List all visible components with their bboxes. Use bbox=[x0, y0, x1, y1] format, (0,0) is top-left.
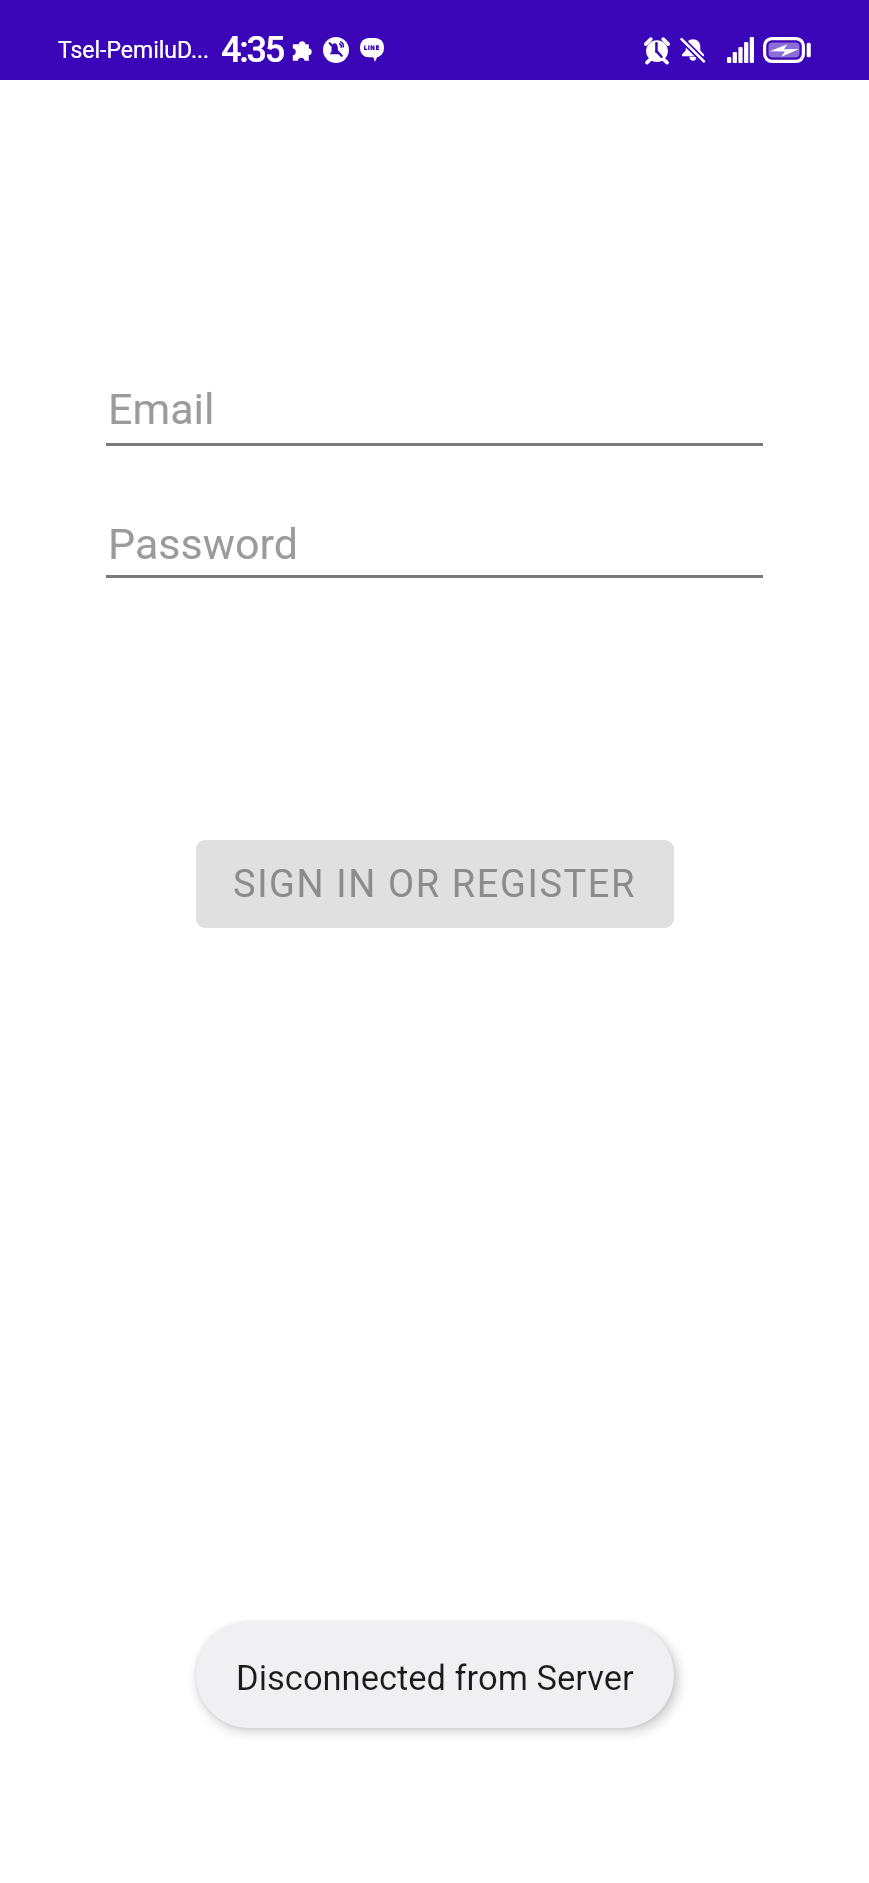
staticText: Disconnected from Server bbox=[236, 1658, 634, 1698]
staticText: 4:35 bbox=[221, 29, 284, 71]
other: Ringer silent bbox=[680, 37, 706, 63]
other: LINE message bbox=[360, 38, 384, 62]
other: Battery charging bbox=[763, 37, 811, 63]
button[interactable]: Email bbox=[106, 384, 763, 446]
other: Notifications silenced bbox=[323, 37, 349, 63]
staticText: SIGN IN OR REGISTER bbox=[233, 862, 637, 907]
button[interactable]: SIGN IN OR REGISTER bbox=[196, 840, 674, 928]
staticText: Email bbox=[108, 384, 215, 434]
staticText: Password bbox=[108, 519, 298, 569]
staticText: Tsel-PemiluD... bbox=[58, 37, 210, 64]
other: Mobile signal full bbox=[727, 37, 754, 63]
button[interactable]: Password bbox=[106, 519, 763, 578]
other: Extension notification bbox=[292, 40, 313, 61]
other: Alarm set bbox=[643, 36, 671, 64]
